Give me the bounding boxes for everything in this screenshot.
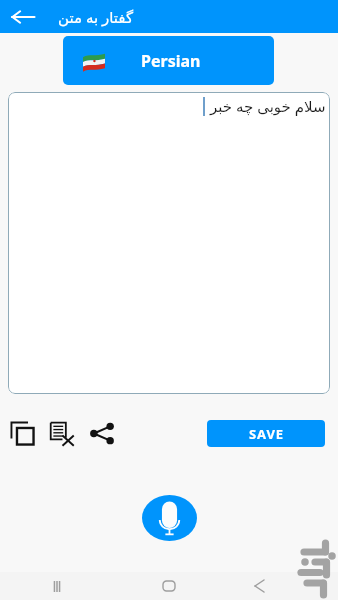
button[interactable]: Persian (63, 36, 274, 85)
button[interactable]: Recent apps (0, 572, 113, 600)
button[interactable]: SAVE (207, 420, 325, 447)
button[interactable]: سلام خوبی چه خبر (8, 92, 330, 394)
staticText: SAVE (249, 425, 284, 443)
button[interactable]: Home (113, 572, 225, 600)
button[interactable]: Back (0, 0, 46, 33)
staticText: گفتار به متن (58, 7, 134, 27)
button[interactable]: Share (90, 423, 114, 444)
button[interactable]: Record (142, 495, 197, 541)
button[interactable]: Back (225, 572, 338, 600)
button[interactable]: Clear text (50, 422, 74, 446)
staticText: Persian (141, 50, 201, 72)
button[interactable]: Copy (11, 422, 34, 445)
staticText: سلام خوبی چه خبر (210, 96, 326, 116)
